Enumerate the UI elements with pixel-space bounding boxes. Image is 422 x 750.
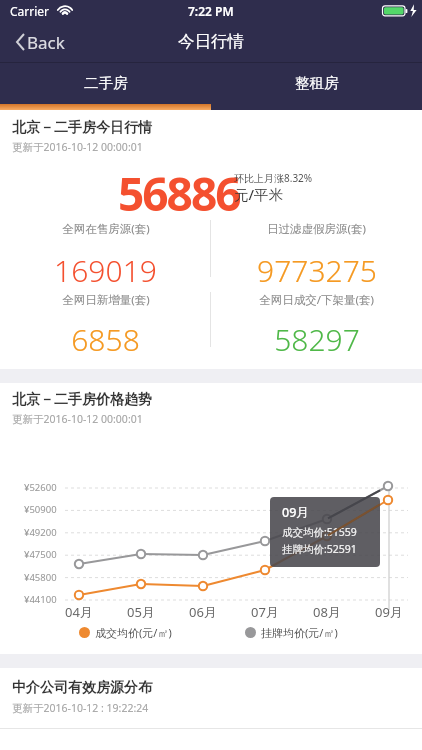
staticText: ¥52600	[24, 481, 57, 494]
staticText: 09月	[375, 603, 403, 621]
button[interactable]: 二手房	[0, 62, 211, 104]
staticText: 日过滤虚假房源(套)	[267, 221, 366, 237]
staticText: 全网在售房源(套)	[62, 221, 150, 237]
staticText: 挂牌均价(元/㎡)	[261, 625, 338, 640]
staticText: 北京－二手房今日行情	[12, 119, 152, 137]
staticText: 08月	[313, 603, 341, 621]
staticText: 全网日新增量(套)	[62, 292, 150, 308]
button[interactable]: Back	[14, 30, 65, 54]
staticText: 全网日成交/下架量(套)	[259, 292, 374, 308]
staticText: 04月	[65, 603, 93, 621]
staticText: ¥44100	[24, 593, 57, 606]
staticText: 环比上月涨8.32%	[234, 171, 313, 185]
button[interactable]: 整租房	[211, 62, 422, 104]
staticText: ¥47500	[24, 548, 57, 561]
staticText: 成交均价:51559	[282, 525, 357, 539]
staticText: 7:22 PM	[188, 3, 234, 19]
staticText: 成交均价(元/㎡)	[95, 625, 172, 640]
staticText: 北京－二手房价格趋势	[12, 391, 152, 409]
staticText: 169019	[54, 250, 157, 291]
staticText: 更新于2016-10-12 00:00:01	[12, 140, 143, 154]
staticText: 6858	[71, 319, 140, 360]
staticText: 今日行情	[178, 31, 244, 52]
staticText: 56886	[118, 162, 240, 225]
staticText: 07月	[251, 603, 279, 621]
staticText: 更新于2016-10-12 00:00:01	[12, 412, 143, 426]
staticText: 06月	[189, 603, 217, 621]
staticText: 9773275	[257, 250, 377, 291]
staticText: 中介公司有效房源分布	[12, 679, 152, 697]
staticText: 09月	[282, 504, 309, 521]
staticText: 05月	[127, 603, 155, 621]
staticText: 元/平米	[234, 184, 284, 204]
staticText: Back	[27, 31, 65, 54]
staticText: Carrier	[10, 3, 50, 19]
staticText: 整租房	[295, 74, 339, 92]
staticText: 二手房	[84, 74, 128, 92]
staticText: 58297	[274, 319, 360, 360]
staticText: ¥49200	[24, 526, 57, 539]
staticText: 更新于2016-10-12 : 19:22:24	[12, 701, 149, 715]
staticText: 挂牌均价:52591	[282, 542, 357, 556]
staticText: ¥45800	[24, 571, 57, 584]
staticText: ¥50900	[24, 503, 57, 516]
